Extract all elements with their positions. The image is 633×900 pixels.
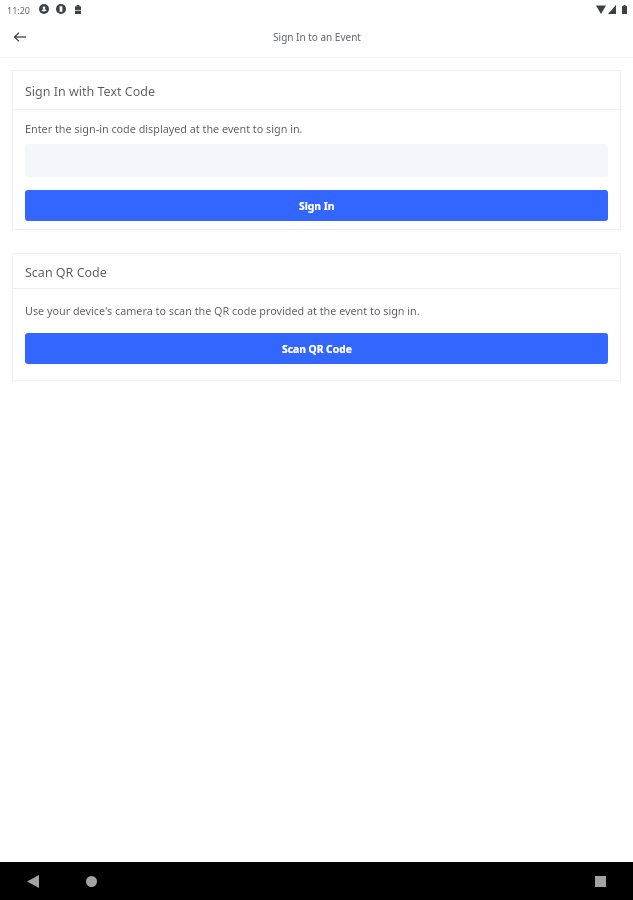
staticText: 11:20 [7, 4, 31, 16]
button[interactable]: Recents [586, 867, 614, 895]
staticText: Sign In [299, 199, 335, 213]
staticText: Enter the sign-in code displayed at the … [25, 121, 303, 136]
button[interactable]: Back [6, 23, 34, 51]
button[interactable]: Scan QR Code [25, 333, 608, 364]
staticText: Scan QR Code [25, 264, 107, 281]
staticText: Sign In to an Event [273, 30, 361, 44]
button[interactable]: Back [19, 867, 47, 895]
staticText: Sign In with Text Code [25, 83, 155, 100]
button[interactable]: Home [77, 867, 105, 895]
button[interactable]: Sign In [25, 190, 608, 221]
staticText: Scan QR Code [282, 342, 352, 356]
staticText: Use your device's camera to scan the QR … [25, 303, 420, 318]
